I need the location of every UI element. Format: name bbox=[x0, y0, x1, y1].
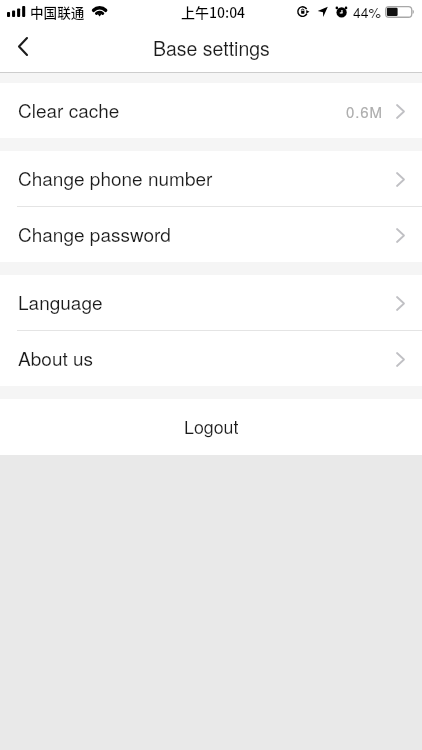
staticText: 中国联通 bbox=[30, 2, 85, 22]
staticText: About us bbox=[18, 344, 94, 371]
staticText: Change phone number bbox=[18, 164, 213, 191]
button[interactable]: Clear cache bbox=[0, 83, 422, 138]
staticText: Base settings bbox=[153, 34, 270, 62]
staticText: Language bbox=[18, 288, 103, 315]
staticText: Logout bbox=[184, 414, 239, 439]
button[interactable]: Change phone number bbox=[0, 151, 422, 206]
staticText: Clear cache bbox=[18, 96, 120, 123]
button[interactable]: Back bbox=[0, 26, 46, 73]
staticText: Change password bbox=[18, 220, 171, 247]
staticText: 44% bbox=[353, 2, 382, 22]
staticText: 0.6M bbox=[346, 101, 383, 122]
button[interactable]: About us bbox=[0, 331, 422, 386]
button[interactable]: Language bbox=[0, 275, 422, 330]
button[interactable]: Change password bbox=[0, 207, 422, 262]
staticText: 上午10:04 bbox=[181, 2, 246, 22]
button[interactable]: Logout bbox=[0, 399, 422, 455]
